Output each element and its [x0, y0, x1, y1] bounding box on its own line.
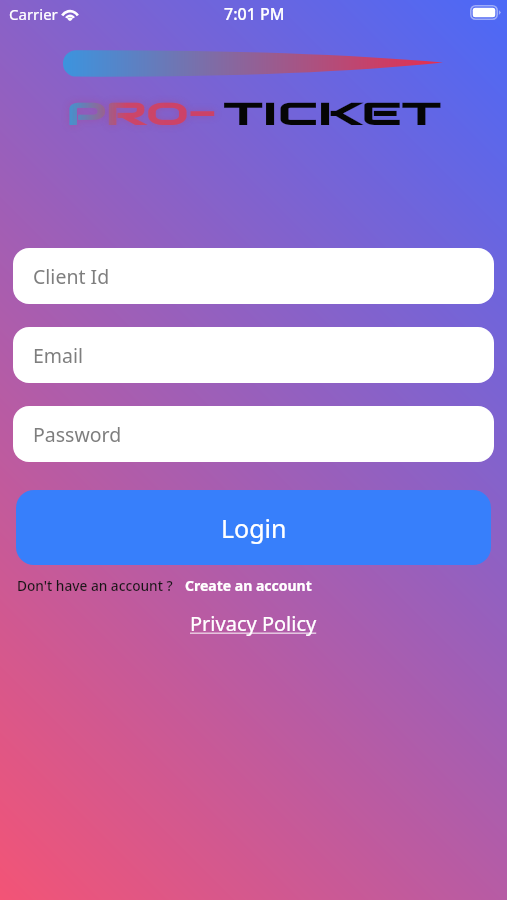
staticText: Don't have an account ? — [17, 576, 173, 595]
button[interactable]: Password — [13, 406, 494, 462]
staticText: 7:01 PM — [224, 3, 285, 25]
staticText: Login — [221, 511, 287, 545]
button[interactable]: Create an account — [185, 576, 312, 595]
staticText: PRO- — [66, 94, 217, 134]
other: Wi-Fi signal — [59, 4, 81, 22]
other: Battery full — [470, 5, 501, 20]
staticText: Password — [33, 421, 122, 448]
button[interactable]: Privacy Policy — [190, 610, 317, 637]
staticText: Client Id — [33, 263, 110, 290]
staticText: Email — [33, 342, 84, 369]
staticText: Privacy Policy — [190, 610, 317, 637]
staticText: Carrier — [9, 4, 58, 24]
button[interactable]: Login — [16, 490, 491, 565]
button[interactable]: Client Id — [13, 248, 494, 304]
staticText: Create an account — [185, 576, 312, 595]
staticText: TICKET — [223, 94, 442, 134]
button[interactable]: Email — [13, 327, 494, 383]
